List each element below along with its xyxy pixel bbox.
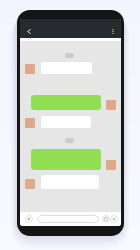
button[interactable] <box>20 149 116 170</box>
button[interactable]: Attach <box>110 215 118 223</box>
button[interactable]: Back <box>24 26 34 37</box>
button[interactable]: Emoji <box>102 215 110 223</box>
button[interactable]: More options <box>108 26 118 37</box>
button[interactable]: Record voice <box>25 215 33 223</box>
button[interactable] <box>25 116 91 128</box>
button[interactable] <box>37 215 99 223</box>
button[interactable] <box>25 62 92 74</box>
button[interactable] <box>25 175 99 189</box>
button[interactable] <box>20 95 116 110</box>
